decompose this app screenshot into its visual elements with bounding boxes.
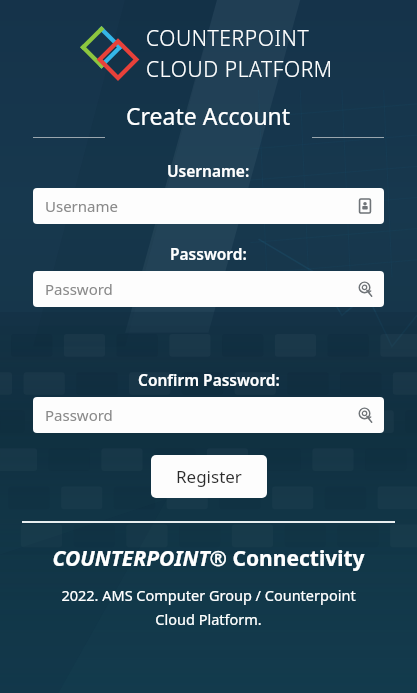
other: Username field [357, 198, 373, 214]
staticText: Username [45, 196, 357, 216]
staticText: Create Account [126, 100, 291, 131]
staticText: CLOUD PLATFORM [146, 55, 333, 84]
staticText: Username: [167, 160, 250, 181]
other: Password field [357, 281, 373, 297]
staticText: COUNTERPOINT [146, 24, 310, 53]
other: Password field [357, 407, 373, 423]
staticText: COUNTERPOINT® Connectivity [52, 544, 365, 573]
staticText: Password [45, 279, 357, 299]
staticText: Password: [170, 243, 247, 264]
button[interactable]: Password [33, 271, 384, 307]
staticText: Password [45, 405, 357, 425]
button[interactable]: Password [33, 397, 384, 433]
staticText: Register [176, 465, 242, 488]
button[interactable]: Register [151, 455, 267, 498]
staticText: 2022. AMS Computer Group / Counterpoint … [0, 585, 417, 629]
staticText: Confirm Password: [138, 369, 280, 390]
button[interactable]: Username [33, 188, 384, 224]
